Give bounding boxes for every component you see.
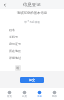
staticText: 提交 — [29, 78, 35, 82]
button[interactable]: Back — [2, 2, 8, 8]
staticText: 信息登记 — [23, 2, 41, 8]
staticText: 身份证号 — [9, 42, 21, 46]
staticText: 验 — [16, 66, 20, 70]
staticText: 手机号 — [9, 35, 18, 39]
button[interactable]: 首页 — [4, 90, 15, 98]
staticText: 我的 — [52, 95, 57, 98]
button[interactable]: 所在地区 — [9, 47, 56, 54]
button[interactable]: 提交 — [20, 77, 44, 83]
staticText: 首页 — [7, 95, 12, 98]
staticText: 请填写您的基本信息 — [0, 11, 64, 15]
staticText: 所在地区 — [9, 49, 21, 53]
button[interactable]: 姓名 — [9, 26, 56, 33]
button[interactable]: 分类 — [19, 90, 30, 98]
staticText: 带 * 为必填项 — [0, 20, 64, 24]
button[interactable]: 手机号 — [9, 33, 56, 40]
staticText: 分类 — [22, 95, 27, 98]
button[interactable]: 身份证号 — [9, 40, 56, 47]
button[interactable]: 消息 — [34, 90, 45, 98]
button[interactable]: 详细地址 — [9, 54, 56, 61]
staticText: 姓名 — [9, 28, 15, 32]
staticText: 详细地址 — [9, 56, 21, 60]
staticText: 消息 — [37, 95, 42, 98]
button[interactable]: 我的 — [49, 90, 60, 98]
